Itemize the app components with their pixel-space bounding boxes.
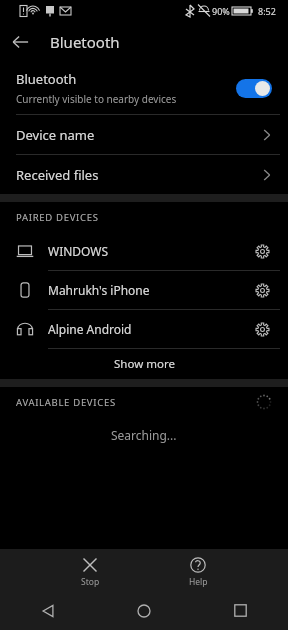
button[interactable]: Bluetooth: [0, 62, 288, 114]
button[interactable]: Recents: [192, 591, 288, 630]
other: Bluetooth toggle: [236, 79, 272, 98]
staticText: Help: [189, 576, 208, 588]
staticText: 8:52: [258, 5, 276, 17]
button[interactable]: Received files: [0, 155, 288, 194]
button[interactable]: Device settings: [250, 239, 274, 263]
button[interactable]: Mahrukh's iPhone: [0, 271, 288, 309]
button[interactable]: Device name: [0, 115, 288, 154]
button[interactable]: Help: [170, 553, 226, 588]
button[interactable]: Back: [0, 22, 40, 62]
staticText: Show more: [114, 356, 175, 372]
button[interactable]: Device settings: [250, 317, 274, 341]
staticText: Received files: [16, 166, 260, 184]
staticText: Alpine Android: [48, 321, 250, 337]
staticText: Bluetooth: [50, 32, 120, 52]
button[interactable]: Device settings: [250, 278, 274, 302]
button[interactable]: Show more: [0, 349, 288, 379]
button[interactable]: WINDOWS: [0, 232, 288, 270]
staticText: Bluetooth: [16, 70, 77, 88]
staticText: Mahrukh's iPhone: [48, 282, 250, 298]
button[interactable]: Stop: [62, 553, 118, 588]
staticText: Stop: [81, 576, 100, 588]
staticText: Device name: [16, 126, 260, 144]
button[interactable]: Back: [0, 591, 96, 630]
staticText: Currently visible to nearby devices: [16, 92, 177, 106]
staticText: WINDOWS: [48, 243, 250, 259]
button[interactable]: Home: [96, 591, 192, 630]
staticText: PAIRED DEVICES: [16, 211, 272, 224]
staticText: 90%: [212, 5, 230, 17]
staticText: AVAILABLE DEVICES: [16, 396, 256, 409]
button[interactable]: Alpine Android: [0, 310, 288, 348]
staticText: Searching...: [111, 427, 177, 443]
